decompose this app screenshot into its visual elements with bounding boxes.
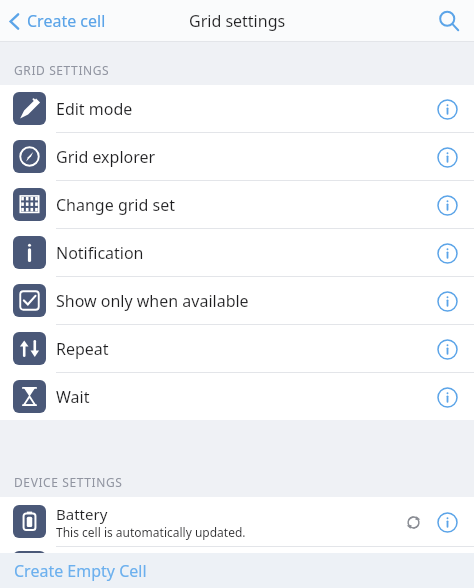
staticText: Show only when available [56,290,432,312]
button[interactable]: Create cell [0,6,114,36]
staticText: Repeat [56,338,432,360]
button[interactable]: Info [432,94,462,124]
staticText: DEVICE SETTINGS [14,474,123,490]
button[interactable]: Info [432,190,462,220]
staticText: Battery percentage [56,557,432,579]
staticText: This cell is automatically updated. [56,524,246,540]
button[interactable]: Info [432,142,462,172]
button[interactable]: Search [434,6,464,36]
staticText: GRID SETTINGS [14,62,110,78]
button[interactable]: Repeat [0,324,474,372]
button[interactable]: Battery [0,497,474,546]
button[interactable]: Edit mode [0,85,474,132]
button[interactable]: Grid explorer [0,132,474,180]
button[interactable]: Battery percentage [0,546,474,588]
button[interactable]: Show only when available [0,276,474,324]
button[interactable]: Notification [0,228,474,276]
button[interactable]: Info [432,238,462,268]
staticText: Wait [56,386,432,408]
button[interactable]: Wait [0,372,474,420]
button[interactable]: Info [432,334,462,364]
button[interactable]: Info [432,286,462,316]
staticText: Create cell [27,10,106,32]
button[interactable]: Info [432,382,462,412]
staticText: Grid settings [189,10,286,32]
button[interactable]: Info [432,507,462,537]
staticText: Create Empty Cell [14,560,147,582]
button[interactable]: Create Empty Cell [0,553,474,588]
staticText: Battery [56,504,108,524]
staticText: Edit mode [56,98,432,120]
staticText: Notification [56,242,432,264]
staticText: Grid explorer [56,146,432,168]
button[interactable]: Refresh [400,509,426,535]
staticText: Change grid set [56,194,432,216]
button[interactable]: Change grid set [0,180,474,228]
